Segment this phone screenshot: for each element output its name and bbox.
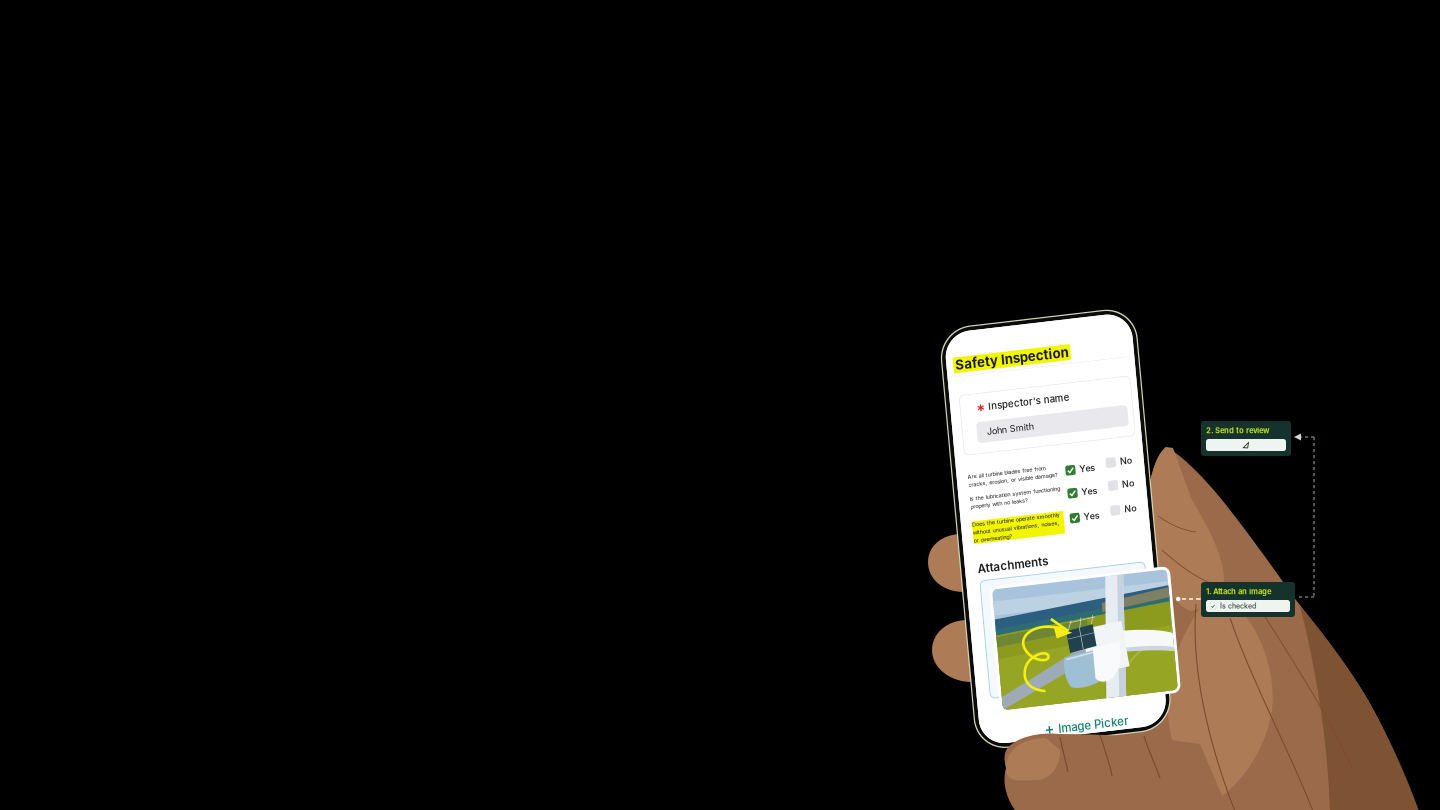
- staticText: 1. Attach an image: [1206, 587, 1271, 596]
- staticText: Is checked: [1220, 602, 1256, 610]
- button[interactable]: Is checked: [1206, 600, 1290, 612]
- button[interactable]: Send to review: [1206, 439, 1286, 451]
- staticText: 2. Send to review: [1206, 426, 1269, 435]
